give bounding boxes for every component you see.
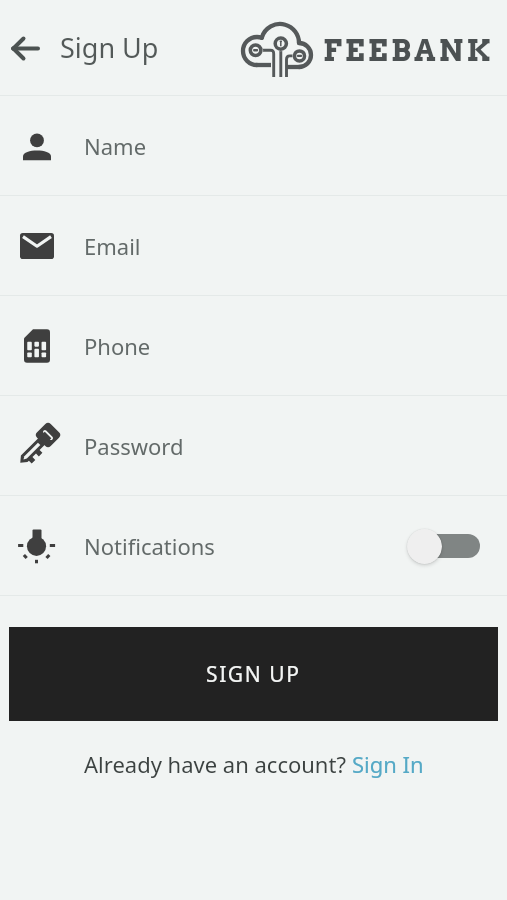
staticText: Phone xyxy=(84,331,151,361)
staticText: Name xyxy=(84,131,147,161)
staticText: Sign Up xyxy=(60,29,159,66)
button[interactable]: Sign In xyxy=(352,749,424,779)
button[interactable]: Phone xyxy=(0,296,507,395)
staticText: Notifications xyxy=(84,531,215,561)
button[interactable]: Password xyxy=(0,396,507,495)
button[interactable]: Notifications toggle xyxy=(407,526,480,566)
staticText: SIGN UP xyxy=(206,660,301,689)
staticText: Already have an account? xyxy=(84,749,352,779)
button[interactable]: Back xyxy=(1,24,49,72)
staticText: Password xyxy=(84,431,184,461)
button[interactable]: Name xyxy=(0,96,507,195)
staticText: Sign In xyxy=(352,749,424,779)
button[interactable]: Email xyxy=(0,196,507,295)
button[interactable]: Notifications xyxy=(0,496,507,595)
staticText: FEEBANK xyxy=(323,33,494,69)
staticText: Email xyxy=(84,231,141,261)
button[interactable]: SIGN UP xyxy=(9,627,498,721)
